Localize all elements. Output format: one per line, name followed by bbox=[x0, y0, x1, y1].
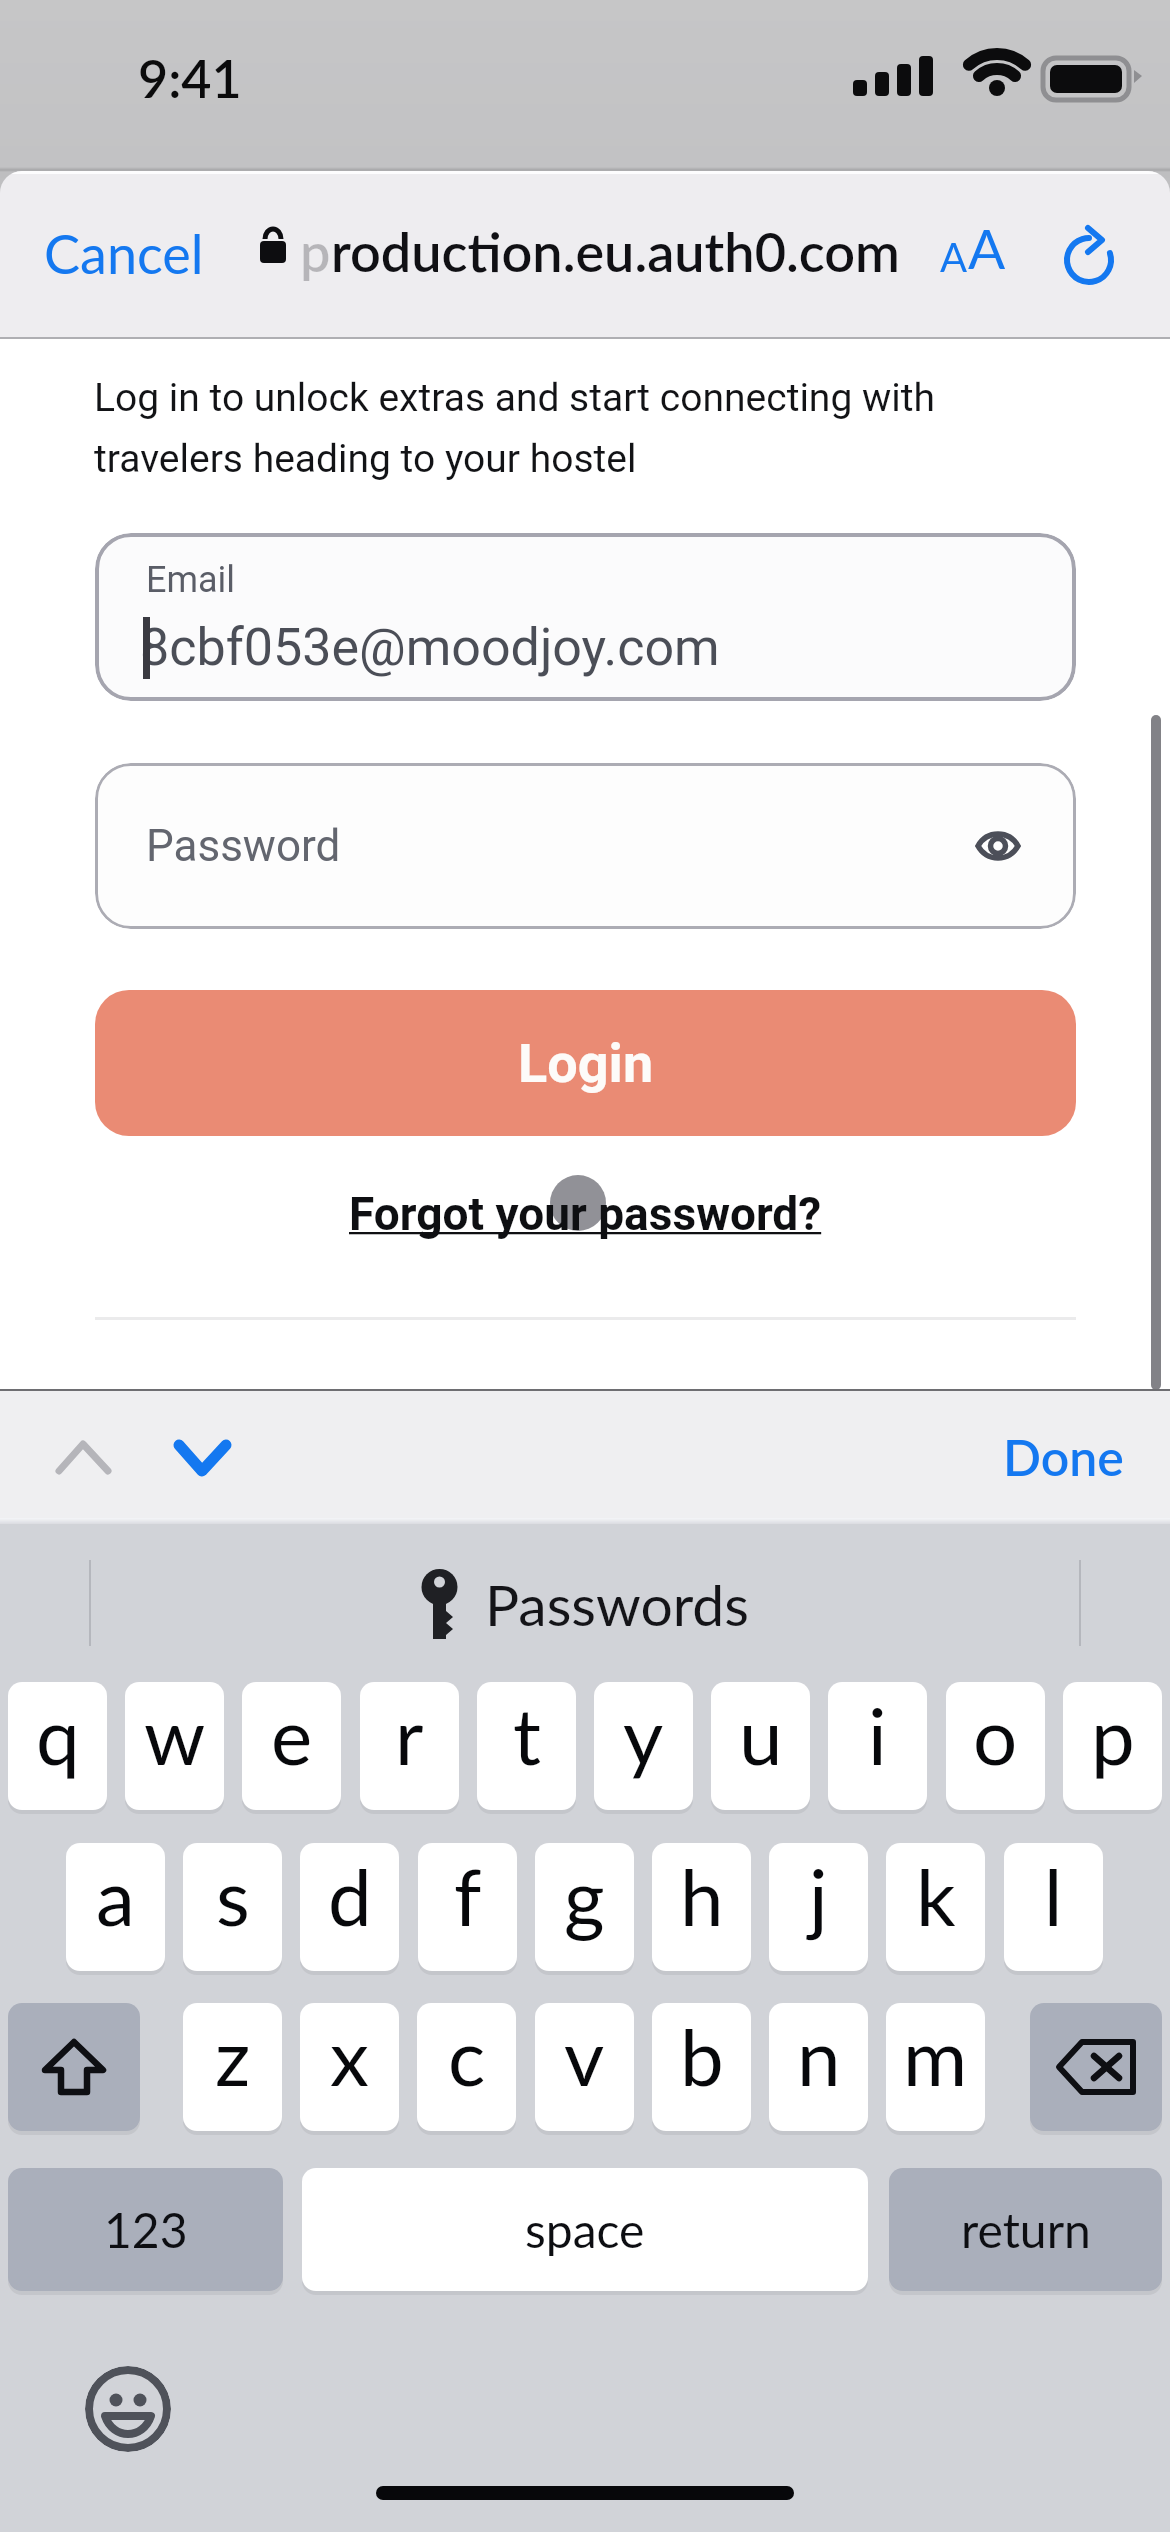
button[interactable]: Email bbox=[95, 533, 1076, 701]
button[interactable]: c bbox=[417, 2003, 516, 2131]
button[interactable]: x bbox=[300, 2003, 399, 2131]
staticText: 123 bbox=[104, 2201, 188, 2259]
staticText: q bbox=[36, 1688, 80, 1782]
button[interactable]: z bbox=[183, 2003, 282, 2131]
button[interactable]: t bbox=[477, 1682, 576, 1810]
button[interactable]: d bbox=[300, 1843, 399, 1971]
staticText: b bbox=[680, 2009, 724, 2103]
staticText: d bbox=[328, 1849, 372, 1943]
staticText: c bbox=[448, 2009, 486, 2103]
staticText: x bbox=[330, 2009, 369, 2103]
button[interactable]: e bbox=[242, 1682, 341, 1810]
staticText: return bbox=[961, 2201, 1091, 2259]
staticText: A bbox=[968, 215, 1006, 281]
button[interactable]: g bbox=[535, 1843, 634, 1971]
button[interactable]: Backspace bbox=[1030, 2003, 1162, 2131]
button[interactable]: u bbox=[711, 1682, 810, 1810]
button[interactable]: Password bbox=[95, 763, 1076, 929]
button[interactable]: Forgot your password? bbox=[343, 1187, 828, 1241]
button[interactable]: Cancel bbox=[34, 207, 214, 300]
staticText: y bbox=[623, 1688, 664, 1782]
staticText: e bbox=[271, 1688, 313, 1782]
staticText: p bbox=[300, 219, 331, 284]
button[interactable]: f bbox=[418, 1843, 517, 1971]
staticText: v bbox=[564, 2009, 605, 2103]
button[interactable]: r bbox=[360, 1682, 459, 1810]
button[interactable]: Numbers bbox=[8, 2168, 283, 2291]
button[interactable]: Shift bbox=[8, 2003, 140, 2131]
button[interactable]: m bbox=[886, 2003, 985, 2131]
staticText: 8cbf053e@moodjoy.com bbox=[140, 617, 720, 678]
staticText: Passwords bbox=[485, 1570, 749, 1638]
staticText: o bbox=[973, 1688, 1018, 1782]
button[interactable]: n bbox=[769, 2003, 868, 2131]
button[interactable]: space bbox=[302, 2168, 868, 2291]
button[interactable]: Show password bbox=[966, 820, 1032, 872]
button[interactable]: i bbox=[828, 1682, 927, 1810]
staticText: 9:41 bbox=[138, 47, 242, 109]
button[interactable]: h bbox=[652, 1843, 751, 1971]
staticText: w bbox=[144, 1688, 206, 1782]
staticText: Login bbox=[518, 1032, 654, 1095]
button[interactable]: s bbox=[183, 1843, 282, 1971]
button[interactable]: v bbox=[535, 2003, 634, 2131]
staticText: m bbox=[903, 2009, 968, 2103]
button[interactable]: Next field bbox=[155, 1408, 249, 1502]
button[interactable]: w bbox=[125, 1682, 224, 1810]
button[interactable]: p bbox=[1063, 1682, 1162, 1810]
button[interactable]: a bbox=[66, 1843, 165, 1971]
staticText: t bbox=[513, 1688, 541, 1782]
staticText: Done bbox=[1003, 1427, 1124, 1487]
button[interactable]: Emoji keyboard bbox=[85, 2366, 171, 2452]
staticText: Email bbox=[146, 559, 236, 601]
staticText: l bbox=[1044, 1849, 1063, 1943]
staticText: Cancel bbox=[44, 221, 204, 286]
button[interactable]: b bbox=[652, 2003, 751, 2131]
button[interactable]: y bbox=[594, 1682, 693, 1810]
staticText: A bbox=[940, 233, 968, 281]
staticText: a bbox=[96, 1849, 135, 1943]
staticText: r bbox=[395, 1688, 424, 1782]
staticText: k bbox=[916, 1849, 956, 1943]
button[interactable]: Login bbox=[95, 990, 1076, 1136]
staticText: space bbox=[525, 2201, 645, 2259]
staticText: p bbox=[1091, 1688, 1135, 1782]
staticText: n bbox=[797, 2009, 841, 2103]
button[interactable]: Done bbox=[993, 1419, 1134, 1495]
staticText: roduction.eu.auth0.com bbox=[331, 219, 900, 284]
button[interactable]: Return bbox=[889, 2168, 1162, 2291]
staticText: Password bbox=[146, 820, 341, 872]
button[interactable]: Passwords bbox=[0, 1544, 1170, 1664]
button[interactable]: q bbox=[8, 1682, 107, 1810]
button[interactable]: j bbox=[769, 1843, 868, 1971]
staticText: Forgot your password? bbox=[349, 1187, 822, 1241]
staticText: Log in to unlock extras and start connec… bbox=[94, 375, 974, 481]
button[interactable]: k bbox=[886, 1843, 985, 1971]
button[interactable]: Page settings bbox=[928, 201, 1018, 295]
staticText: z bbox=[215, 2009, 251, 2103]
staticText: s bbox=[216, 1849, 250, 1943]
button[interactable]: Reload bbox=[1045, 219, 1135, 307]
staticText: h bbox=[680, 1849, 724, 1943]
staticText: f bbox=[454, 1849, 482, 1943]
staticText: i bbox=[868, 1688, 887, 1782]
button[interactable]: o bbox=[946, 1682, 1045, 1810]
button[interactable]: Previous field bbox=[36, 1408, 130, 1502]
staticText: j bbox=[809, 1849, 828, 1943]
staticText: g bbox=[564, 1849, 605, 1943]
button[interactable]: l bbox=[1004, 1843, 1103, 1971]
staticText: u bbox=[739, 1688, 783, 1782]
